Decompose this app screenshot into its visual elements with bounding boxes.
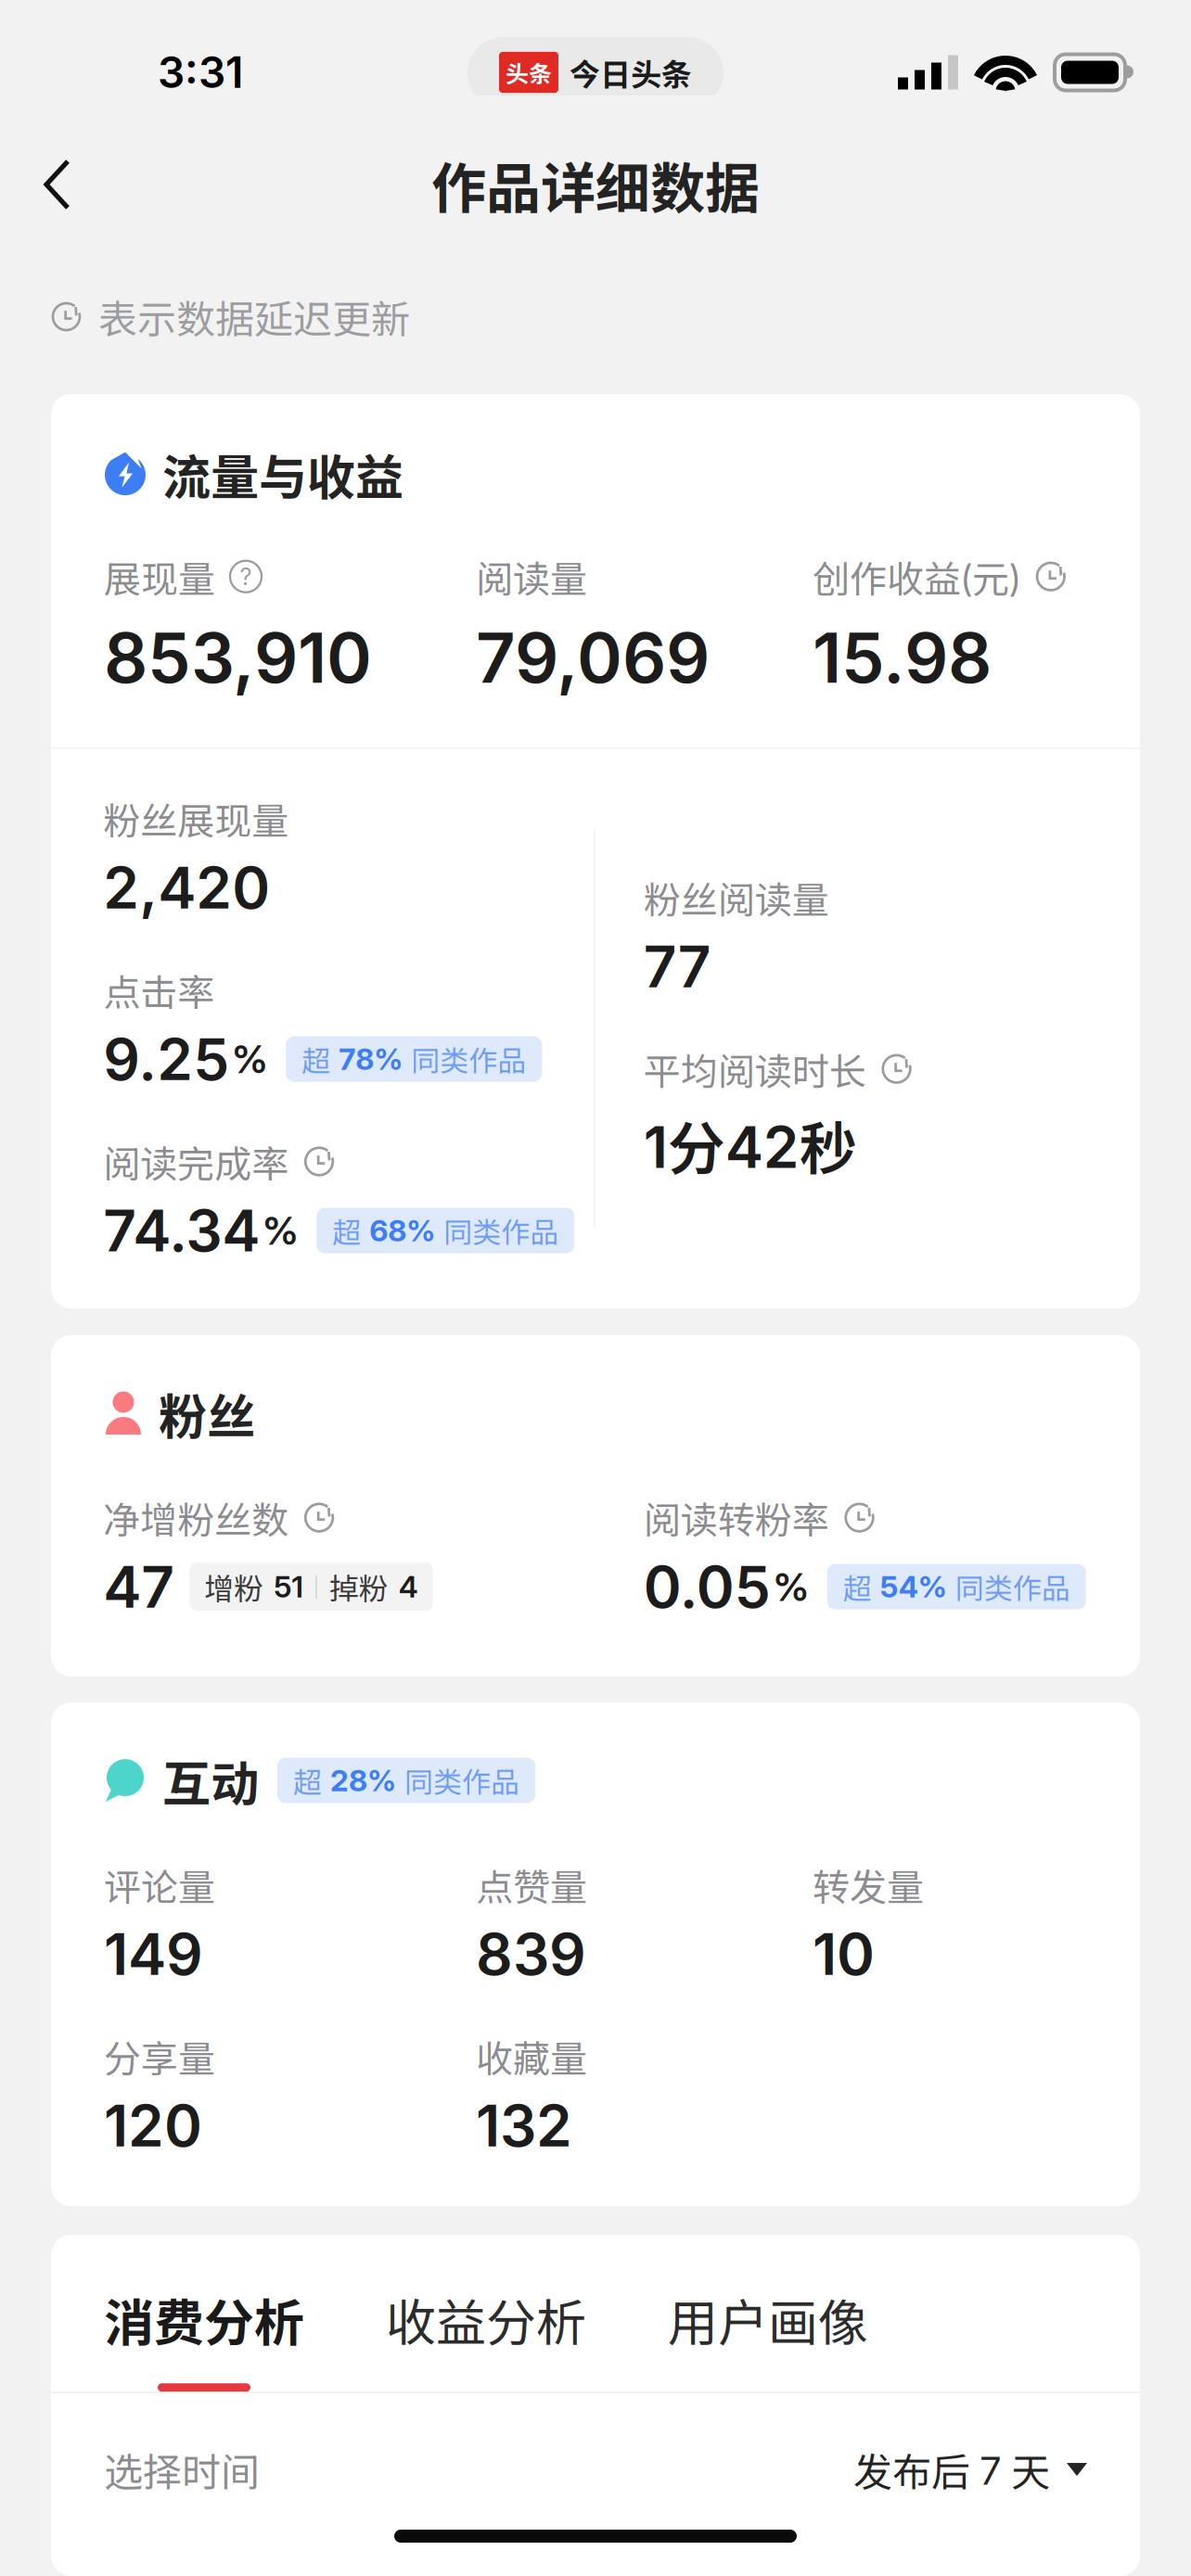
staticText: 流量与收益	[162, 439, 403, 509]
staticText: 120	[104, 2091, 202, 2160]
staticText: 79,069	[476, 616, 710, 699]
staticText: %	[773, 1563, 809, 1610]
staticText: 54%	[880, 1569, 947, 1605]
staticText: 转发量	[813, 1858, 924, 1912]
button[interactable]: 用户画像	[627, 2235, 909, 2392]
staticText: 4	[399, 1569, 418, 1605]
staticText: 15.98	[813, 616, 992, 699]
staticText: 用户画像	[668, 2283, 868, 2355]
staticText: 作品详细数据	[431, 145, 760, 224]
staticText: %	[232, 1036, 267, 1083]
staticText: 收益分析	[386, 2283, 586, 2355]
staticText: 平均阅读时长	[644, 1042, 866, 1096]
staticText: 9.25	[103, 1024, 229, 1094]
staticText: 1分42秒	[644, 1103, 857, 1186]
staticText: 10	[813, 1919, 875, 1989]
staticText: 增粉	[204, 1565, 264, 1608]
staticText: 阅读量	[476, 550, 587, 603]
staticText: 今日头条	[570, 50, 692, 94]
staticText: 粉丝	[159, 1378, 255, 1448]
staticText: 0.05	[644, 1552, 771, 1621]
staticText: 同类作品	[404, 1760, 519, 1801]
staticText: ?	[240, 562, 252, 591]
staticText: 同类作品	[444, 1210, 559, 1251]
button[interactable]: 返回	[0, 130, 107, 239]
staticText: 68%	[369, 1213, 435, 1248]
staticText: 同类作品	[411, 1038, 526, 1080]
staticText: 149	[104, 1919, 203, 1989]
staticText: 分享量	[104, 2029, 215, 2083]
staticText: 839	[476, 1919, 586, 1989]
staticText: 3:31	[158, 47, 243, 98]
staticText: 132	[476, 2091, 572, 2160]
staticText: 消费分析	[104, 2283, 304, 2355]
staticText: 点赞量	[476, 1858, 587, 1912]
staticText: 超	[302, 1038, 330, 1080]
staticText: 掉粉	[329, 1565, 388, 1608]
staticText: 阅读完成率	[103, 1135, 289, 1188]
button[interactable]: 消费分析	[51, 2235, 345, 2392]
staticText: 互动	[162, 1746, 259, 1815]
staticText: 28%	[330, 1762, 396, 1798]
staticText: %	[263, 1207, 298, 1254]
staticText: 78%	[339, 1041, 403, 1077]
staticText: 选择时间	[104, 2441, 260, 2498]
staticText: 51	[274, 1569, 304, 1605]
staticText: 头条	[506, 56, 552, 89]
staticText: 74.34	[103, 1196, 260, 1265]
staticText: 点击率	[103, 963, 214, 1017]
staticText: 粉丝展现量	[103, 792, 289, 845]
staticText: 展现量	[104, 550, 215, 603]
staticText: 2,420	[103, 853, 270, 922]
staticText: 收藏量	[476, 2029, 587, 2083]
staticText: 粉丝阅读量	[644, 871, 829, 924]
staticText: 净增粉丝数	[103, 1491, 289, 1544]
staticText: 同类作品	[955, 1566, 1070, 1608]
staticText: 阅读转粉率	[644, 1491, 829, 1544]
staticText: 超	[843, 1566, 872, 1608]
staticText: 47	[103, 1552, 175, 1621]
button[interactable]: 发布后 7 天	[853, 2441, 1087, 2498]
staticText: 评论量	[104, 1858, 215, 1912]
staticText: 超	[293, 1760, 322, 1801]
staticText: 表示数据延迟更新	[98, 288, 410, 345]
staticText: 发布后 7 天	[853, 2441, 1050, 2498]
staticText: 77	[644, 932, 711, 1001]
staticText: 创作收益(元)	[813, 550, 1020, 603]
staticText: 超	[332, 1210, 361, 1251]
staticText: 853,910	[104, 616, 372, 699]
button[interactable]: 收益分析	[345, 2235, 627, 2392]
